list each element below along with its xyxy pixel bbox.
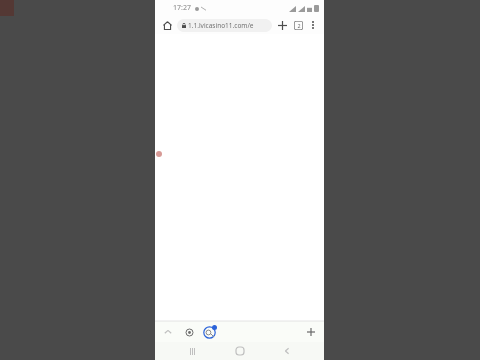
button[interactable]: Tabs — [290, 17, 306, 33]
button[interactable]: Add — [303, 324, 319, 340]
button[interactable]: Recent apps — [182, 342, 202, 360]
button[interactable]: Ad blocker — [182, 325, 196, 339]
button[interactable]: Secret mode — [200, 323, 218, 341]
button[interactable]: Back — [277, 342, 297, 360]
staticText: 17:27 — [173, 3, 191, 13]
button[interactable]: New tab — [274, 17, 290, 33]
staticText: 1.1.lvicasino11.com/e — [188, 21, 254, 30]
button[interactable]: More options — [306, 18, 320, 32]
button[interactable]: 1.1.lvicasino11.com/e — [177, 19, 272, 32]
button[interactable]: Home — [159, 17, 175, 33]
button[interactable]: Home — [230, 342, 250, 360]
button[interactable]: Scroll up — [160, 324, 176, 340]
staticText: 2 — [297, 22, 301, 29]
